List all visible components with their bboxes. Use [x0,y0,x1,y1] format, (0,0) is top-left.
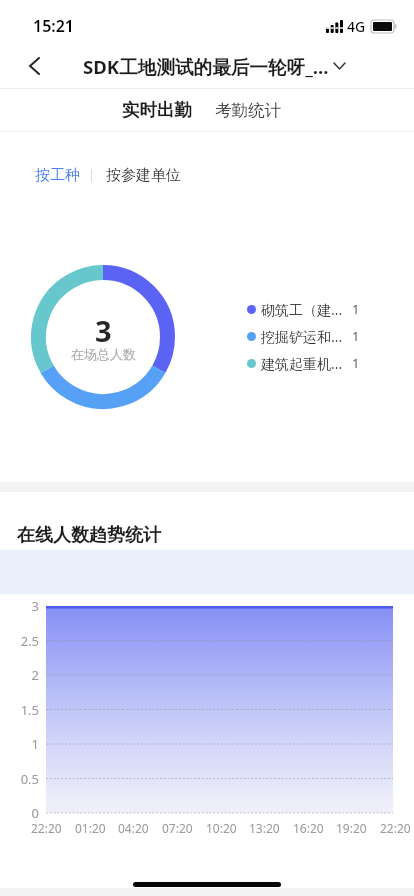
staticText: 按工种 [35,166,80,185]
staticText: 3 [0,597,39,615]
button[interactable]: 考勤统计 [205,88,291,132]
staticText: 挖掘铲运和... [261,327,343,346]
staticText: 考勤统计 [215,100,281,121]
staticText: 4G [347,17,366,36]
staticText: 1 [352,354,360,372]
staticText: 15:21 [33,15,75,37]
staticText: 22:20 [31,820,62,836]
button[interactable]: 砌筑工（建... [247,298,360,320]
staticText: 10:20 [206,820,237,836]
staticText: 2 [0,666,39,684]
staticText: 1.5 [0,701,39,719]
staticText: 13:20 [249,820,280,836]
staticText: 07:20 [162,820,193,836]
staticText: 在场总人数 [71,346,136,362]
staticText: 建筑起重机... [261,354,343,373]
button[interactable]: Back [12,44,56,88]
button[interactable]: SDK工地测试的最后一轮呀_... [83,44,345,88]
staticText: 按参建单位 [106,166,181,185]
staticText: 在线人数趋势统计 [17,524,161,547]
staticText: 3 [95,311,112,350]
button[interactable]: 按参建单位 [92,153,195,197]
staticText: 1 [352,327,360,345]
staticText: 16:20 [293,820,324,836]
staticText: 砌筑工（建... [261,300,343,319]
staticText: 0.5 [0,770,39,788]
staticText: SDK工地测试的最后一轮呀_... [83,54,329,79]
staticText: 2.5 [0,632,39,650]
button[interactable]: 按工种 [24,153,91,197]
button[interactable]: 建筑起重机... [247,352,360,374]
staticText: 1 [0,735,39,753]
staticText: 01:20 [75,820,106,836]
staticText: 22:20 [380,820,411,836]
button[interactable]: 实时出勤 [113,88,201,132]
staticText: 19:20 [336,820,367,836]
staticText: 实时出勤 [122,99,192,121]
button[interactable]: 挖掘铲运和... [247,325,360,347]
staticText: 0 [0,804,39,822]
staticText: 1 [352,300,360,318]
staticText: 04:20 [118,820,149,836]
